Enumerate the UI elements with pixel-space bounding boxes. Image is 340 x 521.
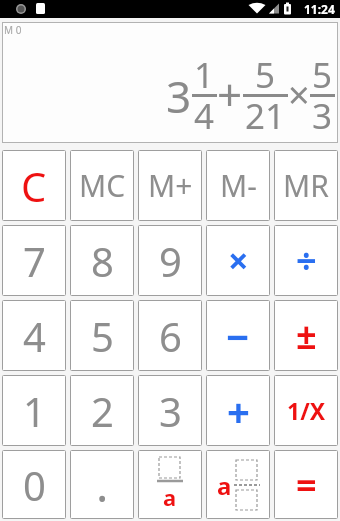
staticText: M+ <box>148 165 193 206</box>
button[interactable]: 5 <box>70 300 134 371</box>
button[interactable]: 1/X <box>274 375 338 446</box>
staticText: 2 <box>91 384 114 438</box>
staticText: 6 <box>159 309 182 363</box>
staticText: 3 <box>159 384 182 438</box>
button[interactable]: 6 <box>138 300 202 371</box>
button[interactable]: MC <box>70 150 134 221</box>
button[interactable]: MR <box>274 150 338 221</box>
staticText: 1 <box>194 51 215 99</box>
staticText: . <box>96 453 109 516</box>
button[interactable]: × <box>206 225 270 296</box>
staticText: ÷ <box>296 236 317 285</box>
staticText: 21 <box>245 92 286 140</box>
staticText: 11:24 <box>304 1 335 17</box>
staticText: 5 <box>255 51 276 99</box>
button[interactable]: 4 <box>2 300 66 371</box>
staticText: 7 <box>23 234 46 288</box>
button[interactable]: 1 <box>2 375 66 446</box>
staticText: MR <box>283 165 329 206</box>
staticText: 4 <box>194 92 215 140</box>
staticText: × <box>288 68 310 120</box>
staticText: = <box>296 460 317 509</box>
staticText: M 0 <box>4 23 22 37</box>
button[interactable]: a <box>138 450 202 519</box>
button[interactable]: M- <box>206 150 270 221</box>
staticText: 1/X <box>287 395 326 426</box>
staticText: 5 <box>312 51 333 99</box>
button[interactable]: ± <box>274 300 338 371</box>
staticText: − <box>226 309 250 363</box>
staticText: 5 <box>91 309 114 363</box>
button[interactable]: 0 <box>2 450 66 519</box>
staticText: 1 <box>23 384 46 438</box>
button[interactable]: = <box>274 450 338 519</box>
button[interactable]: 8 <box>70 225 134 296</box>
staticText: 3 <box>312 92 333 140</box>
staticText: + <box>217 64 243 124</box>
staticText: 4 <box>23 309 46 363</box>
staticText: C <box>21 159 47 213</box>
staticText: + <box>227 384 250 438</box>
button[interactable]: 7 <box>2 225 66 296</box>
button[interactable]: 9 <box>138 225 202 296</box>
staticText: × <box>228 236 249 285</box>
button[interactable]: . <box>70 450 134 519</box>
staticText: 9 <box>159 234 182 288</box>
staticText: M- <box>220 165 257 206</box>
button[interactable]: + <box>206 375 270 446</box>
button[interactable]: C <box>2 150 66 221</box>
staticText: 8 <box>91 234 114 288</box>
staticText: a <box>163 482 177 512</box>
button[interactable]: a <box>206 450 270 519</box>
button[interactable]: − <box>206 300 270 371</box>
button[interactable]: 2 <box>70 375 134 446</box>
button[interactable]: M+ <box>138 150 202 221</box>
staticText: a <box>217 469 232 502</box>
button[interactable]: ÷ <box>274 225 338 296</box>
button[interactable]: 3 <box>138 375 202 446</box>
staticText: 3 <box>166 66 192 126</box>
staticText: ± <box>296 311 317 360</box>
staticText: 0 <box>23 458 46 512</box>
staticText: MC <box>79 165 126 206</box>
